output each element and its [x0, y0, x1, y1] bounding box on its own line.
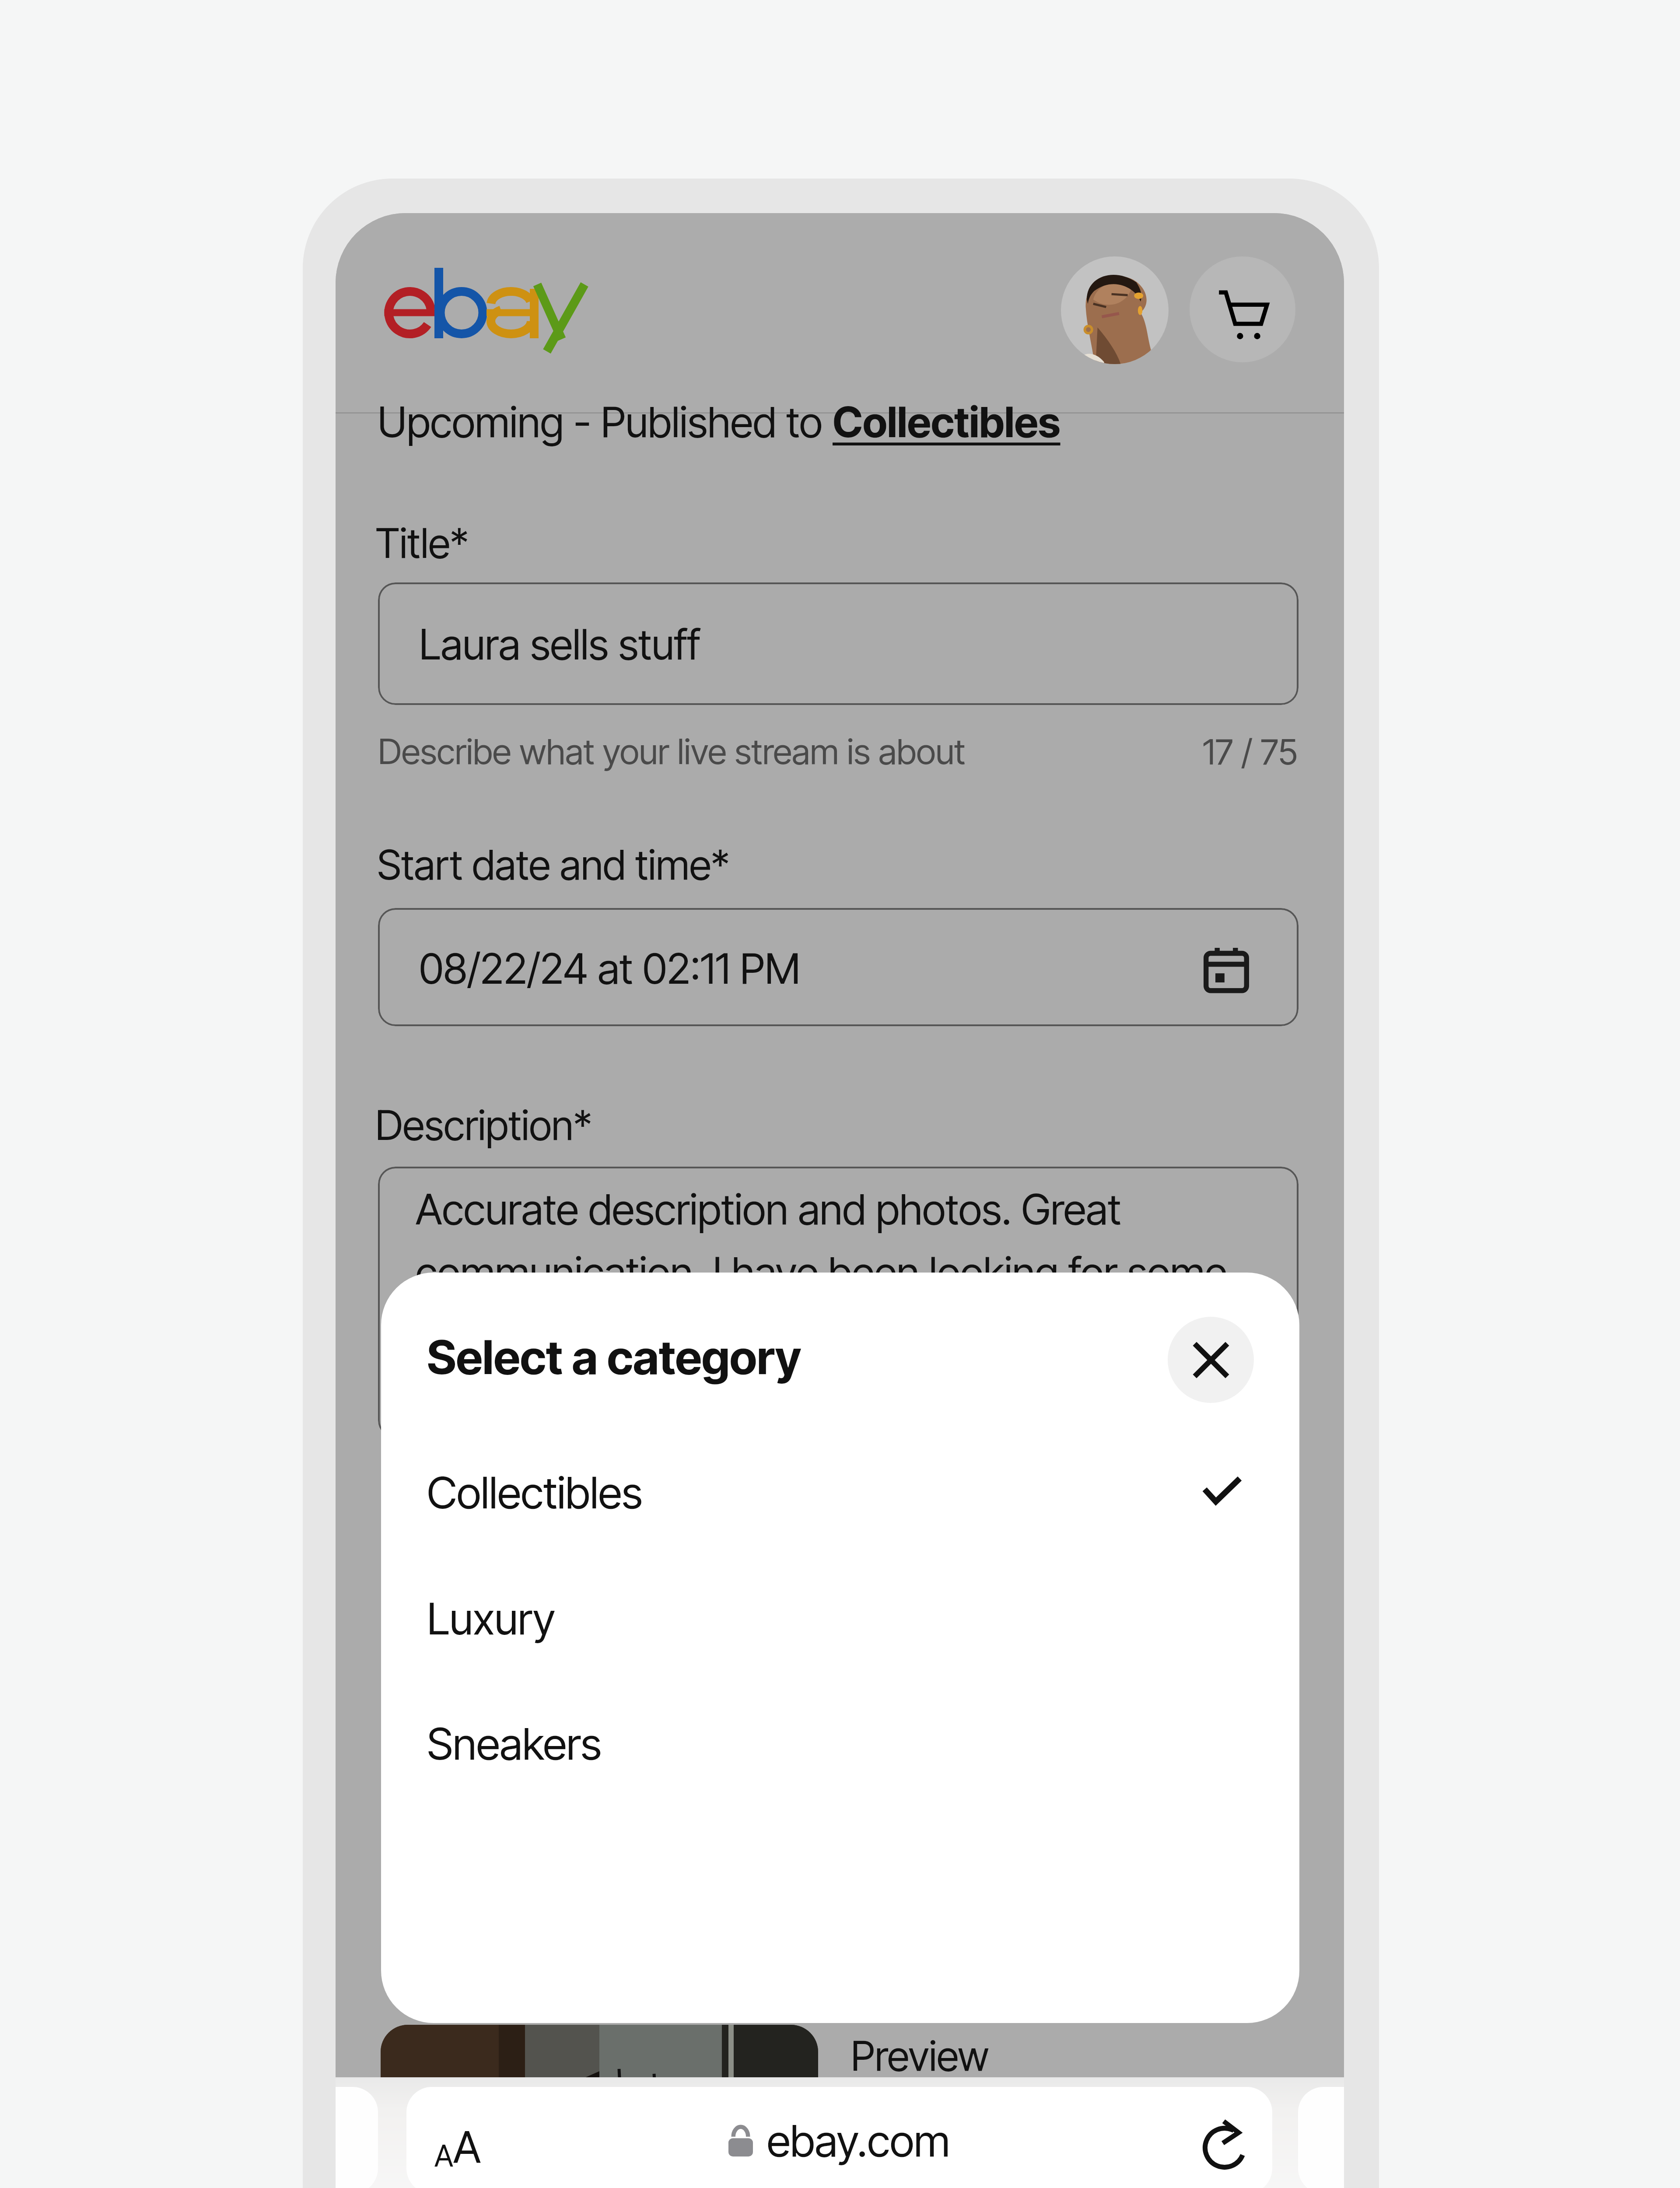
staticText: Select a category	[427, 1329, 801, 1385]
staticText: Upcoming - Published to	[378, 396, 833, 447]
staticText: Luxury	[427, 1592, 555, 1645]
button[interactable]: Collectibles	[381, 1442, 1299, 1568]
button[interactable]: Luxury	[381, 1568, 1299, 1694]
staticText: Preview	[851, 2031, 989, 2081]
button[interactable]: Account	[1061, 256, 1169, 364]
button[interactable]	[378, 1167, 1298, 1438]
staticText: Accurate description and photos. Great	[416, 1184, 1121, 1234]
staticText: A	[434, 2138, 453, 2174]
staticText: Laura sells stuff	[419, 619, 700, 670]
staticText: Collectibles	[833, 396, 1060, 447]
staticText: Start date and time*	[377, 840, 730, 890]
staticText: communication. I have been looking for s…	[416, 1247, 1228, 1297]
button[interactable]: A	[406, 2087, 1272, 2188]
button[interactable]	[378, 908, 1298, 1026]
button[interactable]: Sneakers	[381, 1694, 1299, 1820]
button[interactable]: Cart	[1190, 256, 1295, 362]
staticText: ebay.com	[767, 2114, 950, 2167]
staticText: Description*	[375, 1101, 592, 1150]
staticText: Collectibles	[427, 1466, 643, 1519]
staticText: 17 / 75	[1203, 730, 1298, 773]
button[interactable]: eBay home	[383, 262, 600, 354]
staticText: Describe what your live stream is about	[378, 730, 966, 772]
staticText: 08/22/24 at 02:11 PM	[419, 943, 801, 994]
staticText: Sneakers	[427, 1717, 602, 1770]
staticText: A	[453, 2121, 481, 2174]
staticText: Title*	[375, 519, 469, 568]
button[interactable]	[378, 582, 1298, 705]
button[interactable]: Close	[1168, 1317, 1254, 1403]
